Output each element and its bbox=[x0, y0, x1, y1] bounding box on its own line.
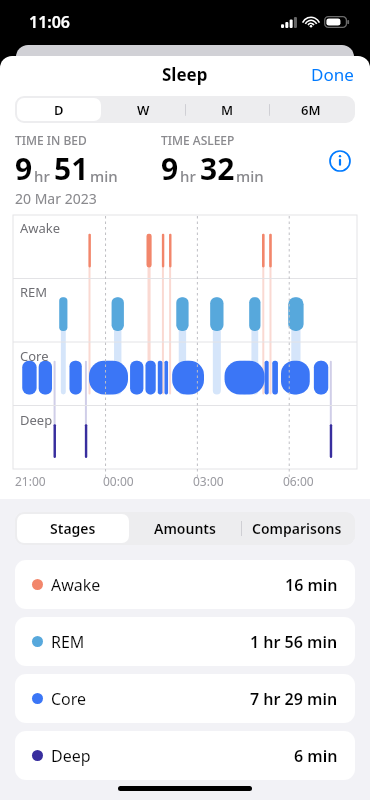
staticText: 16 min bbox=[285, 574, 338, 596]
button[interactable]: Stages bbox=[17, 514, 129, 543]
staticText: hr bbox=[180, 166, 196, 186]
button[interactable]: Awake bbox=[15, 560, 355, 609]
staticText: Core bbox=[20, 347, 49, 365]
staticText: 51 bbox=[54, 148, 89, 189]
button[interactable]: M bbox=[185, 98, 269, 121]
staticText: Stages bbox=[50, 519, 96, 538]
staticText: Comparisons bbox=[252, 519, 342, 538]
button[interactable]: Core bbox=[15, 674, 355, 723]
staticText: 9 bbox=[15, 148, 33, 189]
button[interactable]: D bbox=[17, 98, 101, 121]
staticText: min bbox=[90, 166, 118, 186]
staticText: 6 min bbox=[294, 745, 338, 767]
staticText: M bbox=[221, 101, 234, 119]
staticText: 32 bbox=[200, 148, 235, 189]
button[interactable]: Information bbox=[325, 146, 355, 176]
staticText: 20 Mar 2023 bbox=[15, 189, 97, 208]
staticText: 06:00 bbox=[283, 473, 314, 489]
staticText: hr bbox=[34, 166, 50, 186]
staticText: 11:06 bbox=[29, 11, 71, 33]
staticText: Amounts bbox=[154, 519, 216, 538]
button[interactable]: Comparisons bbox=[241, 514, 353, 543]
staticText: 03:00 bbox=[193, 473, 224, 489]
staticText: Deep bbox=[20, 411, 53, 429]
staticText: Deep bbox=[51, 745, 91, 767]
button[interactable]: W bbox=[101, 98, 185, 121]
staticText: TIME IN BED bbox=[15, 132, 87, 148]
staticText: Core bbox=[51, 688, 87, 710]
button[interactable]: 6M bbox=[269, 98, 353, 121]
staticText: Awake bbox=[51, 574, 101, 596]
button[interactable]: Deep bbox=[15, 731, 355, 780]
staticText: 1 hr 56 min bbox=[250, 631, 338, 653]
button[interactable]: Done bbox=[295, 56, 370, 92]
staticText: 7 hr 29 min bbox=[250, 688, 338, 710]
button[interactable]: REM bbox=[15, 617, 355, 666]
button[interactable]: Amounts bbox=[129, 514, 241, 543]
staticText: 9 bbox=[161, 148, 179, 189]
staticText: REM bbox=[51, 631, 85, 653]
staticText: D bbox=[54, 101, 64, 119]
staticText: 21:00 bbox=[15, 473, 46, 489]
staticText: 6M bbox=[301, 101, 321, 119]
staticText: Done bbox=[311, 63, 354, 85]
staticText: Awake bbox=[20, 219, 61, 237]
staticText: Sleep bbox=[162, 63, 208, 86]
staticText: W bbox=[137, 101, 150, 119]
staticText: 00:00 bbox=[103, 473, 134, 489]
staticText: min bbox=[236, 166, 264, 186]
staticText: REM bbox=[20, 283, 48, 301]
staticText: TIME ASLEEP bbox=[161, 132, 235, 148]
